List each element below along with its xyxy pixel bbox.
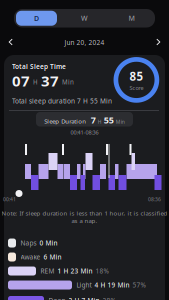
staticText: 55: [104, 114, 114, 126]
staticText: H: [98, 118, 102, 125]
staticText: H: [33, 78, 38, 86]
staticText: Score: [129, 84, 143, 92]
staticText: 1 H 23 Min: [57, 267, 92, 275]
staticText: REM: [40, 267, 54, 275]
staticText: 7: [91, 114, 96, 126]
staticText: 0 Min: [39, 239, 57, 247]
staticText: Min: [62, 78, 74, 86]
button[interactable]: W: [62, 9, 107, 27]
staticText: Jun 20, 2024: [64, 38, 104, 47]
staticText: 18%: [95, 267, 108, 275]
staticText: Awake: [20, 253, 40, 261]
staticText: as a nap.: [71, 216, 97, 225]
staticText: Total Sleep Time: [12, 62, 66, 71]
staticText: Total sleep duration 7 H 55 Min: [12, 96, 112, 105]
staticText: Sleep Duration: [44, 117, 86, 125]
button[interactable]: [15, 190, 22, 197]
staticText: 07: [12, 70, 30, 91]
button[interactable]: M: [109, 9, 154, 27]
staticText: Note: If sleep duration is less than 1 h…: [1, 209, 167, 217]
button[interactable]: D: [16, 11, 57, 26]
staticText: 00:41: [3, 196, 16, 203]
staticText: 4 H 19 Min: [94, 281, 129, 289]
button[interactable]: [153, 36, 163, 47]
staticText: D: [34, 13, 39, 23]
staticText: M: [128, 13, 134, 23]
staticText: 85: [129, 68, 143, 84]
staticText: Naps: [20, 239, 36, 247]
staticText: 00:41-08:36: [70, 128, 98, 136]
staticText: Min: [116, 118, 125, 125]
button[interactable]: [6, 36, 16, 47]
staticText: 2 H 7 Min: [68, 296, 99, 300]
staticText: Deep: [48, 296, 65, 300]
staticText: 57%: [132, 281, 145, 289]
staticText: W: [81, 13, 88, 23]
staticText: 08:36: [148, 196, 161, 203]
staticText: 28%: [102, 296, 115, 300]
staticText: 6 Min: [43, 253, 61, 261]
staticText: Light: [76, 281, 91, 289]
staticText: 37: [41, 70, 59, 91]
